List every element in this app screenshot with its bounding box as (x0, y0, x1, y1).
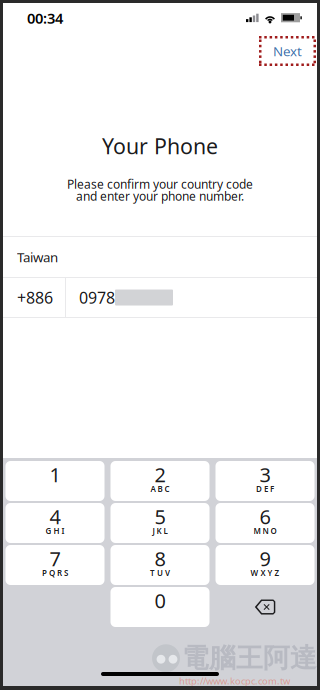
staticText: http://www.kocpc.com.tw (179, 675, 290, 687)
staticText: 7 (49, 545, 60, 572)
staticText: Your Phone (102, 132, 218, 160)
staticText: J K L (152, 526, 167, 536)
button[interactable]: 5 (110, 503, 209, 543)
button[interactable]: 0 (110, 587, 209, 627)
button[interactable]: 6 (215, 503, 314, 543)
button[interactable]: 9 (215, 545, 314, 585)
staticText: W X Y Z (250, 568, 279, 578)
staticText: T U V (150, 568, 170, 578)
button[interactable]: Taiwan (0, 237, 320, 277)
staticText: Please confirm your country code (67, 176, 253, 192)
staticText: 電腦王阿達 (182, 642, 317, 675)
button[interactable]: 2 (110, 461, 209, 501)
button[interactable]: 4 (5, 503, 104, 543)
staticText: 5 (154, 503, 165, 530)
staticText: Taiwan (17, 248, 58, 266)
staticText: +886 (17, 287, 53, 308)
staticText: M N O (253, 526, 276, 536)
staticText: 2 (154, 461, 165, 488)
button[interactable]: Delete (215, 587, 314, 627)
button[interactable]: Next (259, 36, 316, 66)
button[interactable]: 1 (5, 461, 104, 501)
staticText: D E F (256, 484, 274, 494)
button[interactable]: 8 (110, 545, 209, 585)
staticText: P Q R S (42, 568, 68, 578)
staticText: 00:34 (27, 8, 63, 28)
staticText: 6 (259, 503, 270, 530)
staticText: and enter your phone number. (76, 188, 244, 204)
staticText: 0978 (79, 287, 115, 308)
staticText: 1 (49, 461, 60, 488)
button[interactable]: 3 (215, 461, 314, 501)
staticText: 8 (154, 545, 165, 572)
staticText: 4 (49, 503, 60, 530)
staticText: 0 (154, 587, 165, 614)
staticText: Next (273, 42, 302, 60)
button[interactable]: 7 (5, 545, 104, 585)
staticText: 3 (259, 461, 270, 488)
staticText: 9 (259, 545, 270, 572)
staticText: G H I (45, 526, 64, 536)
staticText: A B C (150, 484, 169, 494)
